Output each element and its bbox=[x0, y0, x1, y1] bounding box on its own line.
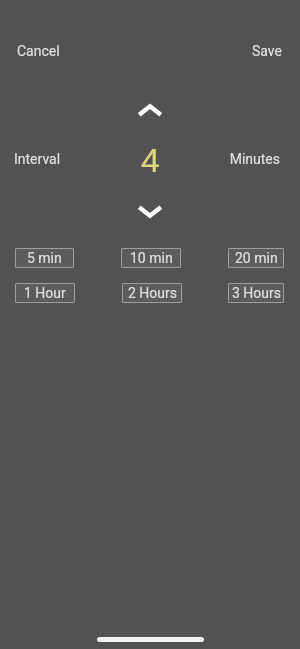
staticText: 5 min bbox=[27, 250, 62, 266]
staticText: Save bbox=[252, 43, 282, 59]
staticText: Minutes bbox=[157, 151, 280, 167]
staticText: 1 Hour bbox=[24, 285, 66, 301]
button[interactable]: 2 Hours bbox=[122, 283, 182, 303]
button[interactable]: Decrease interval bbox=[120, 197, 180, 225]
button[interactable]: 3 Hours bbox=[228, 283, 284, 303]
staticText: Cancel bbox=[17, 43, 60, 59]
staticText: Interval bbox=[14, 151, 137, 167]
staticText: 3 Hours bbox=[232, 285, 281, 301]
staticText: 20 min bbox=[235, 250, 278, 266]
button[interactable]: 10 min bbox=[121, 248, 181, 268]
button[interactable]: Save bbox=[252, 43, 282, 59]
staticText: 2 Hours bbox=[128, 285, 177, 301]
button[interactable]: Increase interval bbox=[120, 96, 180, 124]
button[interactable]: 20 min bbox=[228, 248, 284, 268]
staticText: 4 bbox=[141, 141, 160, 179]
button[interactable]: 5 min bbox=[15, 248, 74, 268]
button[interactable]: 1 Hour bbox=[15, 283, 75, 303]
button[interactable]: Cancel bbox=[17, 43, 60, 59]
staticText: 10 min bbox=[130, 250, 173, 266]
